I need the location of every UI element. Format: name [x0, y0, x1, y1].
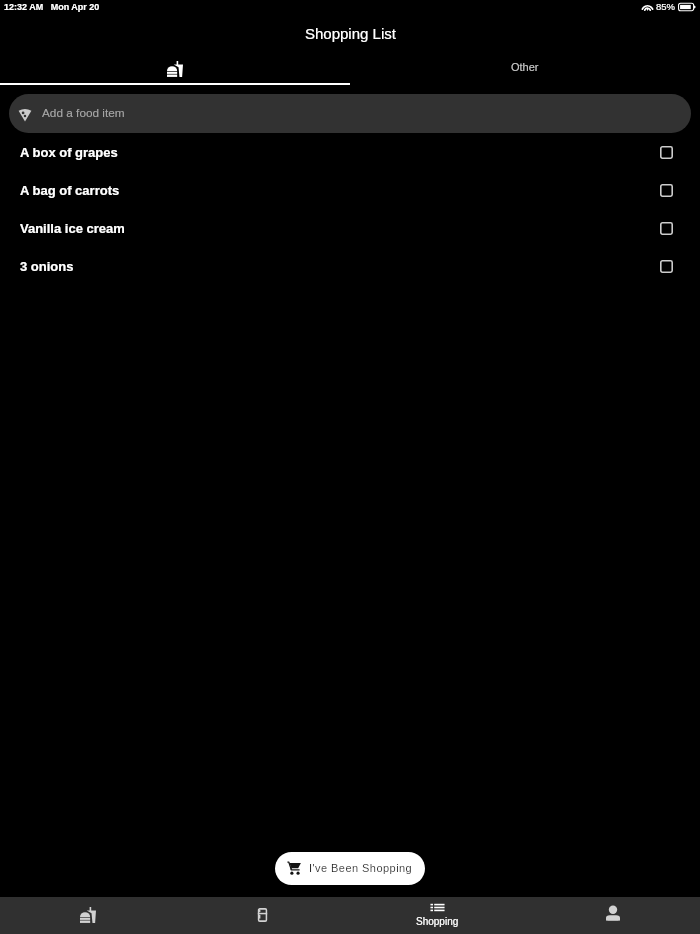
staticText: 3 onions: [20, 259, 74, 274]
staticText: 85%: [656, 1, 676, 12]
button[interactable]: A bag of carrots: [0, 171, 700, 209]
staticText: Other: [511, 61, 539, 73]
staticText: I've Been Shopping: [309, 862, 413, 874]
staticText: A bag of carrots: [20, 183, 120, 198]
button[interactable]: Kitchen: [175, 897, 350, 934]
button[interactable]: Other: [350, 50, 700, 85]
button[interactable]: 3 onions: [0, 247, 700, 285]
button[interactable]: Mark Vanilla ice cream as bought: [656, 218, 676, 238]
button[interactable]: Mark 3 onions as bought: [656, 256, 676, 276]
staticText: A box of grapes: [20, 145, 118, 160]
button[interactable]: Mark A bag of carrots as bought: [656, 180, 676, 200]
button[interactable]: Vanilla ice cream: [0, 209, 700, 247]
staticText: Shopping: [416, 916, 459, 927]
staticText: Shopping List: [305, 25, 396, 42]
button[interactable]: A box of grapes: [0, 133, 700, 171]
staticText: Add a food item: [42, 106, 125, 119]
button[interactable]: Add a food item: [9, 94, 691, 133]
button[interactable]: Food: [0, 50, 350, 85]
button[interactable]: Mark A box of grapes as bought: [656, 142, 676, 162]
button[interactable]: I've Been Shopping: [275, 852, 425, 885]
button[interactable]: Profile: [525, 897, 700, 934]
button[interactable]: Shopping list: [350, 897, 525, 934]
button[interactable]: Food: [0, 897, 175, 934]
staticText: Vanilla ice cream: [20, 221, 125, 236]
staticText: 12:32 AM Mon Apr 20: [4, 2, 100, 12]
